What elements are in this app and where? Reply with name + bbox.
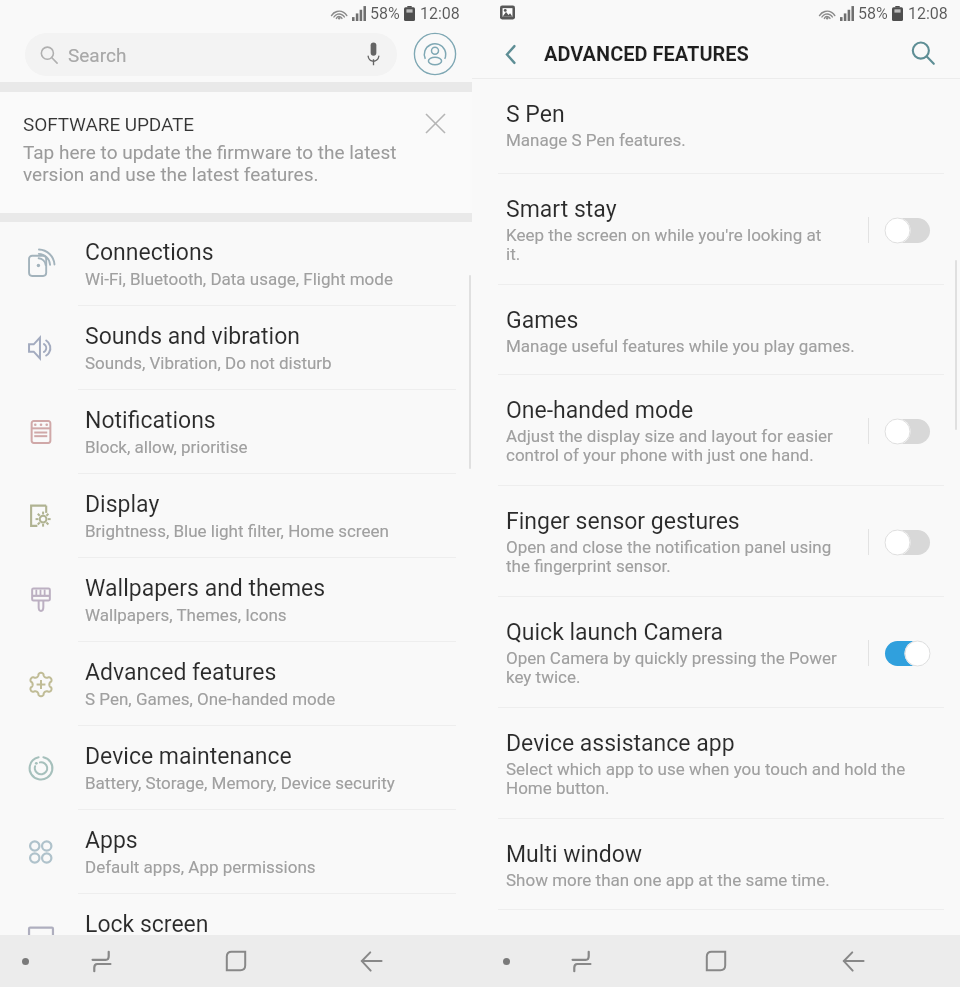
staticText: 12:08	[908, 4, 948, 23]
button[interactable]: Toggle Smart stay	[872, 206, 942, 254]
button[interactable]: Lock screen	[0, 894, 472, 978]
staticText: Brightness, Blue light filter, Home scre…	[85, 521, 389, 541]
staticText: ADVANCED FEATURES	[544, 42, 749, 65]
staticText: Block, allow, prioritise	[85, 437, 248, 457]
staticText: Keep the screen on while you're looking …	[506, 225, 822, 265]
button[interactable]: Toggle Finger sensor gestures	[872, 518, 942, 566]
staticText: Default apps, App permissions	[85, 857, 316, 877]
button[interactable]: Finger sensor gestures	[472, 486, 960, 597]
button[interactable]: Toggle Quick launch Camera	[872, 629, 942, 677]
staticText: Select which app to use when you touch a…	[506, 759, 906, 799]
staticText: Multi window	[506, 841, 643, 868]
staticText: Games	[506, 307, 579, 334]
staticText: Wallpapers and themes	[85, 575, 326, 602]
staticText: Tap here to update the firmware to the l…	[23, 141, 397, 186]
staticText: Apps	[85, 827, 138, 854]
button[interactable]: Notifications	[0, 390, 472, 474]
button[interactable]: One-handed mode	[472, 375, 960, 486]
button[interactable]: Smart stay	[472, 174, 960, 285]
button[interactable]: Games	[472, 285, 960, 375]
staticText: Open and close the notification panel us…	[506, 537, 832, 577]
button[interactable]: Quick launch Camera	[472, 597, 960, 708]
button[interactable]: Connections	[0, 222, 472, 306]
button[interactable]: Menu	[5, 935, 45, 987]
button[interactable]: Home	[694, 935, 738, 987]
staticText: Notifications	[85, 407, 216, 434]
button[interactable]: Apps	[0, 810, 472, 894]
button[interactable]: Wallpapers and themes	[0, 558, 472, 642]
button[interactable]: S Pen	[472, 79, 960, 174]
button[interactable]: Back	[349, 935, 393, 987]
staticText: Smart stay	[506, 196, 617, 223]
staticText: Show more than one app at the same time.	[506, 870, 830, 890]
button[interactable]: Search	[25, 33, 397, 76]
staticText: Device maintenance	[85, 743, 292, 770]
staticText: Open Camera by quickly pressing the Powe…	[506, 648, 837, 688]
staticText: Quick launch Camera	[506, 619, 724, 646]
staticText: Advanced features	[85, 659, 277, 686]
button[interactable]: Advanced features	[0, 642, 472, 726]
staticText: Sounds and vibration	[85, 323, 301, 350]
button[interactable]: Account	[413, 32, 457, 76]
button[interactable]: Device maintenance	[0, 726, 472, 810]
staticText: Adjust the display size and layout for e…	[506, 426, 833, 466]
staticText: Finger sensor gestures	[506, 508, 740, 535]
button[interactable]: Recents	[559, 935, 603, 987]
staticText: Manage useful features while you play ga…	[506, 336, 855, 356]
staticText: S Pen	[506, 101, 565, 128]
staticText: Display	[85, 491, 160, 518]
button[interactable]: Menu	[486, 935, 526, 987]
button[interactable]: Close	[418, 106, 452, 140]
staticText: Sounds, Vibration, Do not disturb	[85, 353, 332, 373]
staticText: Connections	[85, 239, 214, 266]
button[interactable]: Toggle One-handed mode	[872, 407, 942, 455]
button[interactable]: Back	[492, 36, 528, 72]
staticText: 58%	[858, 4, 888, 23]
button[interactable]: Display	[0, 474, 472, 558]
staticText: Screen lock type, Clock style	[85, 941, 299, 961]
button[interactable]: Sounds and vibration	[0, 306, 472, 390]
staticText: SOFTWARE UPDATE	[23, 113, 195, 135]
staticText: Wi-Fi, Bluetooth, Data usage, Flight mod…	[85, 269, 393, 289]
button[interactable]: Back	[831, 935, 875, 987]
button[interactable]: Device assistance app	[472, 708, 960, 819]
staticText: Lock screen	[85, 911, 209, 938]
staticText: Device assistance app	[506, 730, 735, 757]
button[interactable]: Multi window	[472, 819, 960, 910]
staticText: 58%	[370, 4, 400, 23]
button[interactable]: Search	[905, 35, 941, 71]
staticText: Search	[68, 44, 127, 66]
staticText: Battery, Storage, Memory, Device securit…	[85, 773, 395, 793]
button[interactable]: SOFTWARE UPDATE	[0, 92, 472, 213]
staticText: S Pen, Games, One-handed mode	[85, 689, 336, 709]
button[interactable]: Home	[214, 935, 258, 987]
button[interactable]: Recents	[79, 935, 123, 987]
staticText: One-handed mode	[506, 397, 694, 424]
staticText: Manage S Pen features.	[506, 130, 686, 150]
staticText: 12:08	[420, 4, 460, 23]
staticText: Wallpapers, Themes, Icons	[85, 605, 287, 625]
